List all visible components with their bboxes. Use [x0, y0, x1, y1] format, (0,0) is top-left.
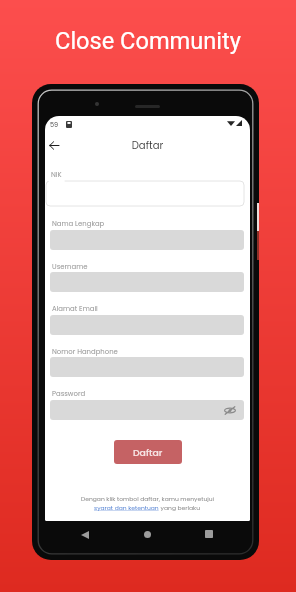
staticText: Alamat Email [52, 304, 98, 314]
staticText: Nomor Handphone [52, 347, 118, 357]
other: Show password [224, 405, 236, 416]
staticText: Close Community [0, 27, 296, 55]
staticText: Nama Lengkap [52, 219, 105, 229]
button[interactable]: Show password [50, 400, 244, 420]
button[interactable]: Back [45, 135, 64, 155]
staticText: Password [52, 389, 86, 399]
staticText: Daftar [45, 138, 250, 152]
staticText: Daftar [133, 446, 163, 459]
staticText: Username [52, 262, 88, 272]
button[interactable]: Daftar [114, 440, 182, 464]
button[interactable]: syarat dan ketentuan [94, 504, 159, 512]
staticText: yang berlaku [159, 504, 201, 512]
staticText: 59 [50, 120, 59, 129]
staticText: Dengan klik tombol daftar, kamu menyetuj… [45, 495, 250, 503]
button[interactable]: Back [81, 531, 89, 539]
button[interactable]: Home [144, 531, 151, 538]
staticText: NIK [51, 170, 62, 180]
button[interactable]: Recents [205, 530, 213, 538]
